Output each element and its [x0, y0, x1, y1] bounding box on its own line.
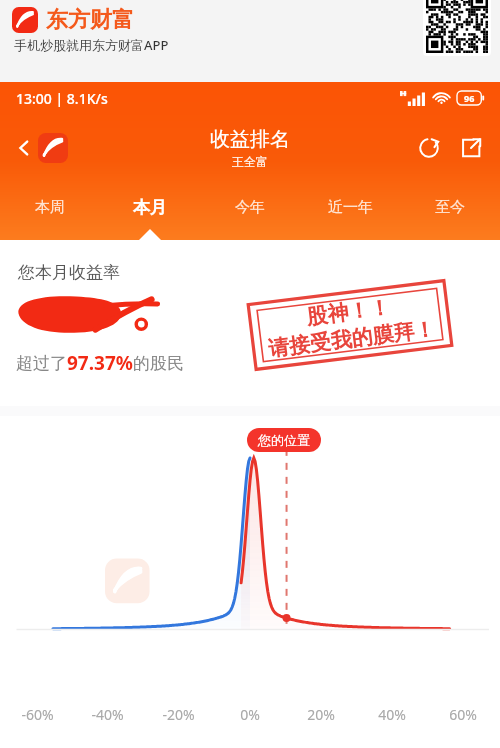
staticText: 40%	[378, 705, 406, 724]
staticText: 96	[464, 92, 475, 104]
staticText: 97.37%	[67, 350, 133, 376]
staticText: 股神！！	[305, 294, 392, 330]
staticText: 王全富	[232, 154, 268, 169]
button[interactable]: Share	[454, 131, 488, 165]
staticText: 20%	[307, 705, 335, 724]
staticText: 的股民	[133, 353, 184, 374]
staticText: -20%	[162, 705, 195, 724]
staticText: 本月	[133, 197, 167, 218]
staticText: 请接受我的膜拜！	[267, 316, 437, 362]
staticText: 本周	[35, 198, 65, 217]
staticText: 近一年	[328, 198, 373, 217]
staticText: 您的位置	[258, 432, 310, 448]
staticText: 手机炒股就用东方财富APP	[14, 36, 169, 54]
staticText: 您本月收益率	[18, 262, 120, 283]
button[interactable]: 您的位置	[247, 428, 321, 452]
staticText: 13:00 | 8.1K/s	[16, 89, 108, 108]
button[interactable]: 至今	[400, 190, 500, 224]
staticText: 东方财富	[46, 6, 134, 34]
button[interactable]: 本月	[100, 190, 200, 224]
button[interactable]: Refresh	[412, 131, 446, 165]
staticText: -60%	[21, 705, 54, 724]
staticText: 超过了	[16, 353, 67, 374]
staticText: 今年	[235, 198, 265, 217]
button[interactable]: 近一年	[300, 190, 400, 224]
button[interactable]: Back	[10, 129, 72, 167]
staticText: 60%	[449, 705, 477, 724]
staticText: 收益排名	[210, 127, 290, 152]
button[interactable]: 今年	[200, 190, 300, 224]
staticText: -40%	[91, 705, 124, 724]
staticText: 至今	[435, 198, 465, 217]
button[interactable]: 本周	[0, 190, 100, 224]
staticText: 0%	[240, 705, 260, 724]
